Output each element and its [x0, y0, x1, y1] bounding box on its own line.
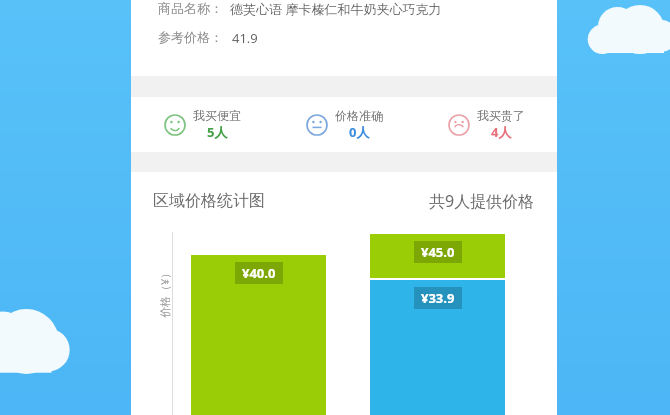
staticText: ¥40.0 [242, 264, 276, 282]
button[interactable]: 价格准确 [273, 104, 415, 145]
staticText: 商品名称： [158, 0, 223, 16]
staticText: 价格（¥） [157, 267, 172, 318]
other: 我买贵了 [448, 114, 470, 136]
staticText: 41.9 [232, 29, 258, 47]
staticText: 4人 [491, 123, 512, 141]
staticText: 价格准确 [335, 108, 383, 123]
staticText: 共9人提供价格 [429, 190, 535, 212]
staticText: ¥45.0 [421, 243, 455, 261]
staticText: 我买贵了 [477, 108, 525, 123]
staticText: 我买便宜 [193, 108, 241, 123]
staticText: 0人 [349, 123, 370, 141]
staticText: 参考价格： [158, 29, 223, 45]
other: 我买便宜 [164, 114, 186, 136]
staticText: 德芙心语 摩卡榛仁和牛奶夹心巧克力 [230, 0, 442, 18]
button[interactable]: 我买贵了 [415, 104, 557, 145]
other: 价格准确 [306, 114, 328, 136]
staticText: ¥33.9 [421, 289, 455, 307]
staticText: 区域价格统计图 [153, 191, 265, 211]
staticText: 5人 [207, 123, 228, 141]
button[interactable]: 我买便宜 [131, 104, 273, 145]
